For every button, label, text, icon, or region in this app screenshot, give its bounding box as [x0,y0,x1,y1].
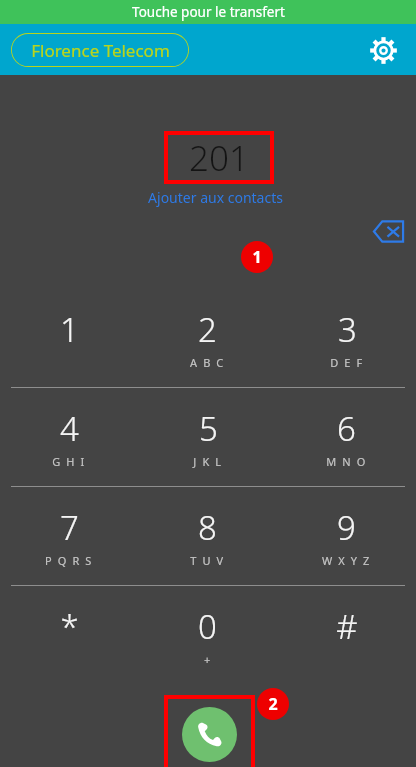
staticText: 2 [198,307,217,352]
button[interactable]: Florence Telecom [11,33,189,67]
button[interactable]: 0 [138,586,277,684]
staticText: 1 [252,246,262,268]
staticText: 5 [199,406,218,451]
staticText: P Q R S [45,553,93,568]
staticText: J K L [193,454,223,469]
button[interactable]: 4 [0,388,138,486]
staticText: Ajouter aux contacts [148,188,283,207]
staticText: Florence Telecom [31,39,170,62]
button[interactable]: # [277,586,416,684]
staticText: Touche pour le transfert [132,3,285,21]
staticText: 7 [60,505,79,550]
button[interactable]: Ajouter aux contacts [148,188,283,207]
button[interactable]: 6 [277,388,416,486]
staticText: 0 [198,604,217,649]
button[interactable]: 3 [277,289,416,387]
button[interactable]: Call [166,697,253,767]
staticText: 201 [189,134,249,182]
staticText: # [336,604,358,649]
staticText: T U V [190,553,225,568]
button[interactable]: 1 [0,289,138,387]
staticText: * [60,604,79,649]
button[interactable]: Touche pour le transfert [0,0,416,24]
staticText: A B C [190,355,225,370]
staticText: 9 [337,505,356,550]
staticText: M N O [326,454,367,469]
staticText: D E F [330,355,364,370]
button[interactable]: * [0,586,138,684]
staticText: 8 [198,505,217,550]
button[interactable]: 8 [138,487,277,585]
button[interactable]: 201 [166,133,272,182]
staticText: 6 [337,406,356,451]
staticText: W X Y Z [322,553,371,568]
button[interactable]: 7 [0,487,138,585]
button[interactable]: Settings [362,29,404,71]
staticText: 4 [60,406,79,451]
staticText: G H I [52,454,86,469]
staticText: 2 [268,693,278,715]
button[interactable]: 9 [277,487,416,585]
button[interactable]: Backspace [368,211,408,251]
button[interactable]: 5 [138,388,277,486]
staticText: 1 [60,307,79,352]
button[interactable]: 2 [138,289,277,387]
staticText: 3 [338,307,357,352]
staticText: + [204,652,212,667]
